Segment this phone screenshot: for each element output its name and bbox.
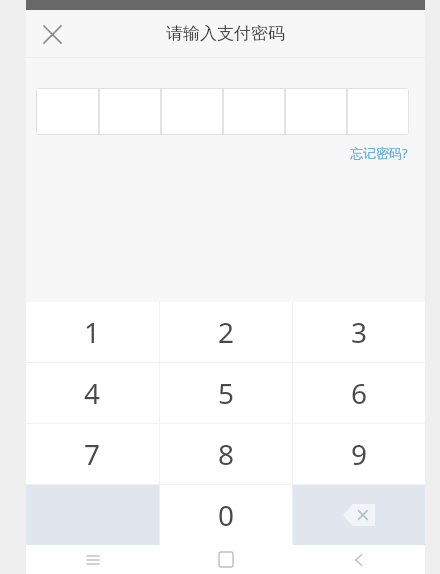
staticText: 2 — [218, 313, 235, 351]
staticText: 请输入支付密码 — [166, 23, 285, 44]
button[interactable]: 忘记密码? — [348, 141, 410, 165]
button[interactable]: 1 — [26, 302, 159, 362]
button[interactable]: Delete — [293, 485, 425, 545]
button[interactable]: 0 — [160, 485, 292, 545]
button[interactable]: 7 — [26, 424, 159, 484]
staticText: 0 — [218, 496, 235, 534]
staticText: 1 — [84, 313, 101, 351]
button[interactable]: Home — [159, 545, 292, 574]
button[interactable]: 4 — [26, 363, 159, 423]
button[interactable]: Payment password — [36, 88, 409, 135]
staticText: 5 — [218, 374, 235, 412]
button[interactable]: 3 — [293, 302, 425, 362]
staticText: 8 — [218, 435, 235, 473]
staticText: 9 — [351, 435, 368, 473]
button[interactable]: 9 — [293, 424, 425, 484]
staticText: 3 — [351, 313, 368, 351]
staticText: 6 — [351, 374, 368, 412]
staticText: 4 — [84, 374, 101, 412]
button[interactable]: 5 — [160, 363, 292, 423]
button[interactable]: Close — [30, 12, 74, 56]
button[interactable]: Back — [292, 545, 425, 574]
staticText: 7 — [84, 435, 101, 473]
button[interactable]: 8 — [160, 424, 292, 484]
button[interactable]: 6 — [293, 363, 425, 423]
button[interactable]: Menu — [26, 545, 159, 574]
button[interactable]: 2 — [160, 302, 292, 362]
staticText: 忘记密码? — [350, 144, 408, 162]
